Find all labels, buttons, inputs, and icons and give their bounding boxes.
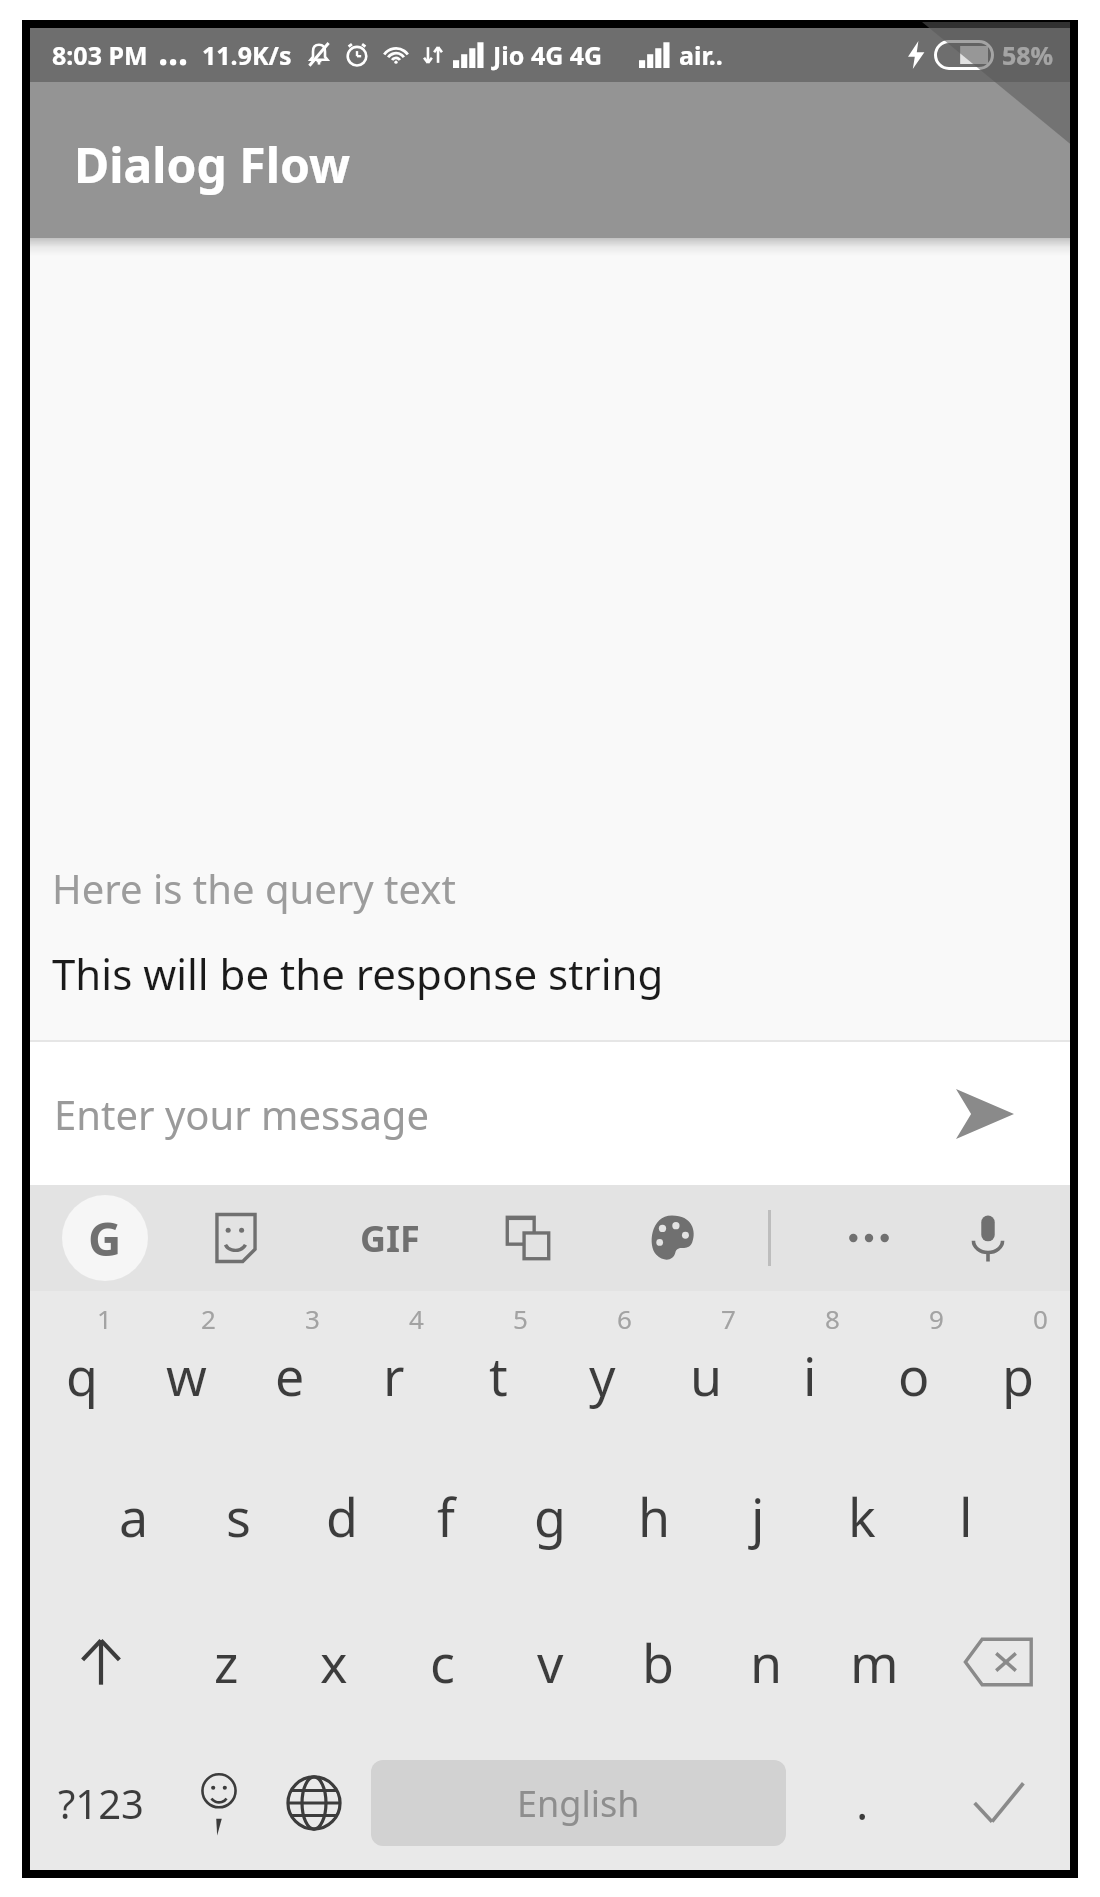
button[interactable]: 8 (758, 1291, 862, 1443)
staticText: 8:03 PM (52, 38, 148, 72)
staticText: air.. (679, 38, 723, 72)
button[interactable]: n (712, 1589, 820, 1735)
button[interactable]: GIF (344, 1198, 436, 1278)
button[interactable]: x (280, 1589, 388, 1735)
staticText: This will be the response string (52, 945, 664, 1002)
staticText: m (850, 1627, 899, 1698)
button[interactable]: c (388, 1589, 496, 1735)
staticText: w (166, 1340, 207, 1411)
staticText: 11.9K/s (202, 38, 292, 72)
button[interactable]: Send (930, 1059, 1040, 1169)
button[interactable]: More options (829, 1198, 909, 1278)
staticText: 6 (617, 1301, 632, 1336)
button[interactable]: l (914, 1443, 1018, 1589)
staticText: v (537, 1627, 564, 1698)
staticText: GIF (360, 1214, 420, 1263)
staticText: English (517, 1779, 640, 1828)
button[interactable]: Themes (632, 1198, 712, 1278)
button[interactable]: h (602, 1443, 706, 1589)
button[interactable]: Google search (62, 1195, 148, 1281)
staticText: k (848, 1481, 876, 1552)
button[interactable]: Emoji and comma (171, 1735, 266, 1870)
button[interactable]: v (496, 1589, 604, 1735)
button[interactable]: Voice input (948, 1198, 1028, 1278)
button[interactable]: 9 (862, 1291, 966, 1443)
staticText: y (589, 1340, 616, 1411)
staticText: r (383, 1340, 405, 1411)
staticText: 3 (305, 1301, 320, 1336)
staticText: e (275, 1340, 305, 1411)
button[interactable]: Translate (488, 1198, 568, 1278)
staticText: . (856, 1771, 869, 1834)
button[interactable]: Shift (30, 1589, 172, 1735)
button[interactable]: 4 (342, 1291, 446, 1443)
button[interactable]: Enter your message (54, 1042, 930, 1185)
staticText: Enter your message (54, 1087, 429, 1141)
button[interactable]: Change language (266, 1735, 361, 1870)
staticText: 58% (1002, 38, 1054, 72)
staticText: g (534, 1481, 566, 1552)
staticText: 5 (513, 1301, 528, 1336)
staticText: p (1002, 1340, 1034, 1411)
staticText: z (214, 1627, 239, 1698)
staticText: ?123 (58, 1776, 144, 1830)
staticText: 0 (1033, 1301, 1048, 1336)
staticText: Dialog Flow (74, 132, 351, 197)
button[interactable]: s (186, 1443, 290, 1589)
staticText: 9 (929, 1301, 944, 1336)
button[interactable]: d (290, 1443, 394, 1589)
staticText: Jio 4G 4G (493, 38, 603, 72)
button[interactable]: Stickers (196, 1198, 276, 1278)
staticText: t (489, 1340, 508, 1411)
button[interactable]: z (172, 1589, 280, 1735)
staticText: 1 (97, 1301, 112, 1336)
button[interactable]: g (498, 1443, 602, 1589)
button[interactable]: f (394, 1443, 498, 1589)
staticText: 4 (409, 1301, 424, 1336)
staticText: h (638, 1481, 671, 1552)
staticText: u (690, 1340, 723, 1411)
staticText: j (751, 1481, 765, 1552)
staticText: a (119, 1481, 149, 1552)
staticText: b (642, 1627, 674, 1698)
staticText: d (326, 1481, 358, 1552)
button[interactable]: ?123 (30, 1735, 171, 1870)
staticText: G (88, 1207, 122, 1270)
staticText: x (320, 1627, 348, 1698)
button[interactable]: Backspace (928, 1589, 1070, 1735)
staticText: 2 (201, 1301, 216, 1336)
staticText: n (750, 1627, 783, 1698)
staticText: 8 (825, 1301, 840, 1336)
staticText: c (430, 1627, 455, 1698)
staticText: l (959, 1481, 973, 1552)
button[interactable]: 2 (134, 1291, 238, 1443)
button[interactable]: Done (928, 1735, 1070, 1870)
button[interactable]: m (820, 1589, 928, 1735)
staticText: Here is the query text (52, 861, 456, 915)
button[interactable]: 1 (30, 1291, 134, 1443)
staticText: 7 (721, 1301, 736, 1336)
button[interactable]: 0 (966, 1291, 1070, 1443)
staticText: o (898, 1340, 930, 1411)
button[interactable]: English (371, 1760, 786, 1846)
button[interactable]: 5 (446, 1291, 550, 1443)
staticText: q (66, 1340, 98, 1411)
staticText: i (803, 1340, 817, 1411)
staticText: s (226, 1481, 251, 1552)
button[interactable]: j (706, 1443, 810, 1589)
button[interactable]: a (82, 1443, 186, 1589)
staticText: f (437, 1481, 455, 1552)
button[interactable]: 3 (238, 1291, 342, 1443)
button[interactable]: 6 (550, 1291, 654, 1443)
button[interactable]: k (810, 1443, 914, 1589)
button[interactable]: 7 (654, 1291, 758, 1443)
button[interactable]: b (604, 1589, 712, 1735)
button[interactable]: . (796, 1735, 928, 1870)
